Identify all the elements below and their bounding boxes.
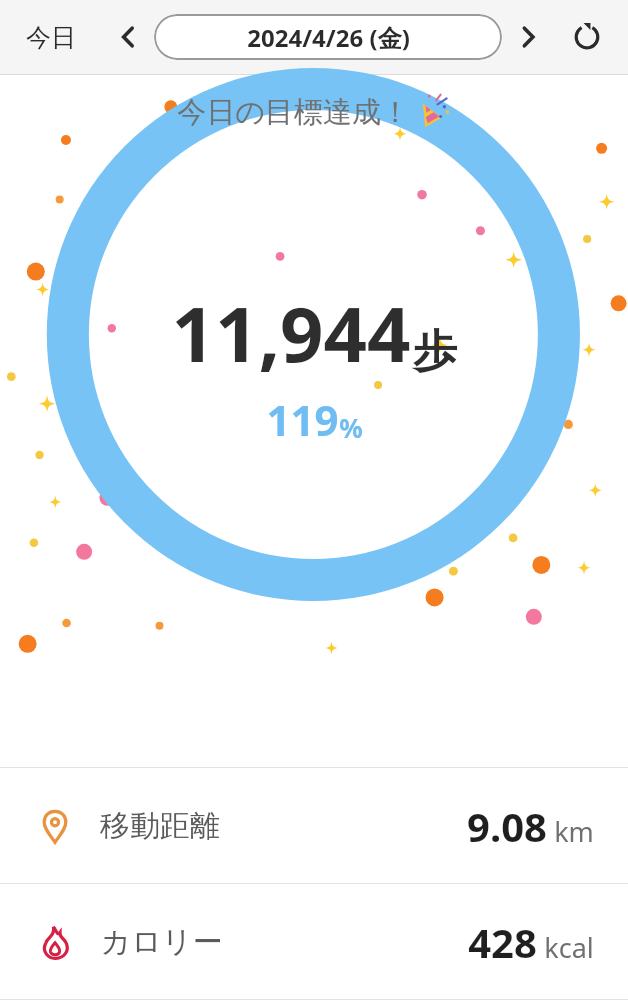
staticText: 歩: [413, 324, 457, 379]
button[interactable]: 次の日: [506, 15, 550, 59]
staticText: 11,944: [171, 281, 411, 385]
staticText: km: [554, 813, 594, 850]
button[interactable]: カロリー: [0, 884, 628, 999]
button[interactable]: 更新: [564, 14, 610, 60]
staticText: %: [339, 410, 363, 445]
staticText: 今日: [26, 22, 76, 53]
button[interactable]: 移動距離: [0, 768, 628, 883]
staticText: 428: [468, 915, 537, 969]
button[interactable]: 前の日: [106, 15, 150, 59]
staticText: 2024/4/26 (金): [247, 21, 410, 54]
staticText: 119: [266, 391, 339, 448]
button[interactable]: 2024/4/26 (金): [154, 14, 502, 60]
staticText: kcal: [544, 929, 594, 966]
staticText: 9.08: [467, 799, 547, 853]
staticText: 今日の目標達成！: [177, 94, 410, 131]
staticText: 移動距離: [100, 807, 220, 845]
staticText: カロリー: [100, 923, 223, 961]
button[interactable]: 今日: [18, 16, 84, 59]
